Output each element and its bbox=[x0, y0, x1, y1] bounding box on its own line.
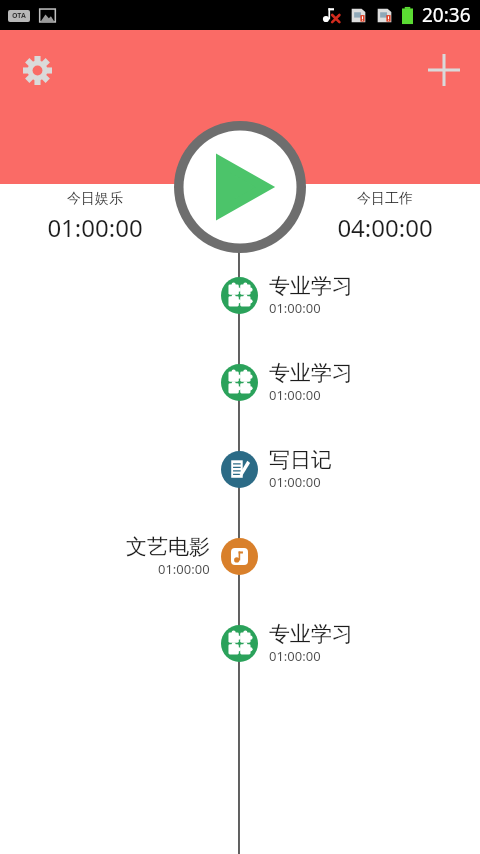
staticText: OTA bbox=[12, 11, 26, 21]
staticText: 01:00:00 bbox=[269, 386, 321, 404]
staticText: 01:00:00 bbox=[269, 647, 321, 665]
staticText: 01:00:00 bbox=[269, 299, 321, 317]
button[interactable]: 文艺电影 bbox=[0, 532, 480, 580]
staticText: 20:36 bbox=[422, 2, 471, 28]
staticText: 01:00:00 bbox=[158, 560, 210, 578]
staticText: 04:00:00 bbox=[337, 211, 433, 244]
staticText: 文艺电影 bbox=[126, 534, 210, 560]
staticText: 01:00:00 bbox=[269, 473, 321, 491]
staticText: 专业学习 bbox=[269, 360, 353, 386]
staticText: 01:00:00 bbox=[47, 211, 143, 244]
staticText: 专业学习 bbox=[269, 273, 353, 299]
button[interactable]: 专业学习 bbox=[0, 358, 480, 406]
staticText: 今日娱乐 bbox=[67, 190, 123, 208]
button[interactable]: 专业学习 bbox=[0, 271, 480, 319]
button[interactable]: 专业学习 bbox=[0, 619, 480, 667]
button[interactable]: 今日工作 bbox=[290, 190, 480, 244]
button[interactable]: Start timer bbox=[174, 121, 306, 253]
button[interactable]: 今日娱乐 bbox=[0, 190, 190, 244]
button[interactable]: 写日记 bbox=[0, 445, 480, 493]
button[interactable]: Settings bbox=[17, 50, 57, 90]
staticText: 今日工作 bbox=[357, 190, 413, 208]
button[interactable]: Add activity bbox=[424, 50, 464, 90]
staticText: 写日记 bbox=[269, 447, 332, 473]
staticText: 专业学习 bbox=[269, 621, 353, 647]
